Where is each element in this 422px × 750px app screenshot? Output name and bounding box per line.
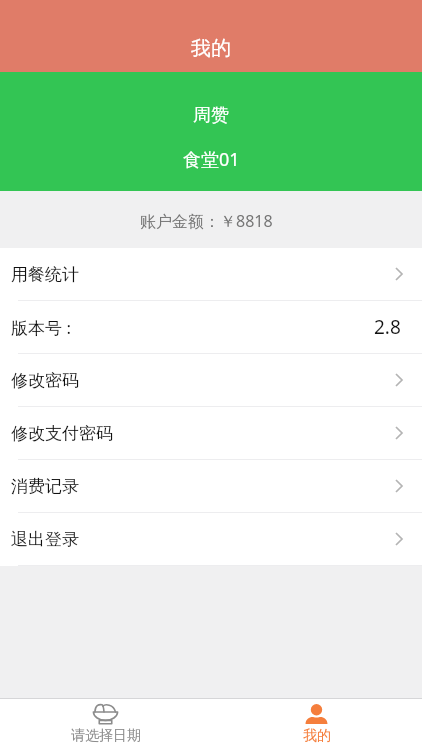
button[interactable]: 我的 (0, 24, 422, 72)
staticText: 周赞 (193, 104, 229, 127)
staticText: 账户金额：￥8818 (140, 210, 273, 232)
staticText: 修改支付密码 (11, 423, 113, 444)
staticText: 我的 (303, 727, 331, 745)
staticText: 请选择日期 (71, 727, 141, 745)
button[interactable]: 修改密码 (0, 354, 422, 407)
staticText: 退出登录 (11, 529, 79, 550)
button[interactable]: 我的 (211, 699, 422, 750)
staticText: 修改密码 (11, 370, 79, 391)
staticText: 食堂01 (183, 147, 240, 172)
button[interactable]: 消费记录 (0, 460, 422, 513)
button[interactable]: 请选择日期 (0, 699, 211, 750)
staticText: 我的 (191, 36, 231, 61)
button[interactable]: 修改支付密码 (0, 407, 422, 460)
staticText: 用餐统计 (11, 264, 79, 285)
button[interactable]: 用餐统计 (0, 248, 422, 301)
button[interactable]: 版本号 : (0, 301, 422, 354)
staticText: 消费记录 (11, 476, 79, 497)
button[interactable]: 退出登录 (0, 513, 422, 566)
staticText: 2.8 (374, 314, 401, 340)
staticText: 版本号 : (11, 316, 71, 339)
